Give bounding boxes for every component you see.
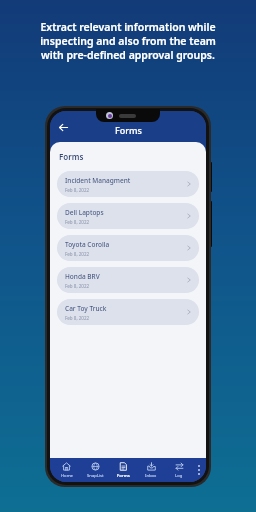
staticText: Incident Managment	[65, 176, 131, 185]
button[interactable]: Back	[55, 119, 71, 135]
button[interactable]: Honda BRV	[57, 267, 199, 293]
staticText: Feb 8, 2022	[65, 251, 90, 257]
staticText: with pre-defined approval groups.	[41, 48, 215, 62]
button[interactable]: Log	[165, 458, 193, 482]
staticText: Home	[61, 473, 73, 479]
button[interactable]: SnapList	[81, 458, 109, 482]
staticText: Log	[175, 473, 183, 479]
button[interactable]: Incident Managment	[57, 171, 199, 197]
staticText: Feb 8, 2022	[65, 315, 90, 321]
button[interactable]: Dell Laptops	[57, 203, 199, 229]
staticText: Toyota Corolla	[65, 240, 110, 249]
staticText: inspecting and also from the team	[40, 34, 216, 48]
staticText: Dell Laptops	[65, 208, 104, 217]
staticText: Forms	[115, 124, 142, 136]
staticText: Feb 8, 2022	[65, 283, 90, 289]
button[interactable]: Forms	[109, 458, 137, 482]
staticText: Feb 8, 2022	[65, 219, 90, 225]
staticText: Inbox	[145, 473, 157, 479]
button[interactable]: Car Toy Truck	[57, 299, 199, 325]
staticText: Forms	[59, 151, 84, 162]
staticText: Car Toy Truck	[65, 304, 107, 313]
button[interactable]: Home	[52, 458, 81, 482]
staticText: Honda BRV	[65, 272, 100, 281]
staticText: SnapList	[87, 473, 104, 479]
staticText: Feb 8, 2022	[65, 187, 90, 193]
button[interactable]: Inbox	[137, 458, 165, 482]
button[interactable]: More options	[193, 458, 205, 482]
staticText: Forms	[117, 473, 130, 479]
button[interactable]: Toyota Corolla	[57, 235, 199, 261]
staticText: Extract relevant information while	[40, 20, 216, 34]
